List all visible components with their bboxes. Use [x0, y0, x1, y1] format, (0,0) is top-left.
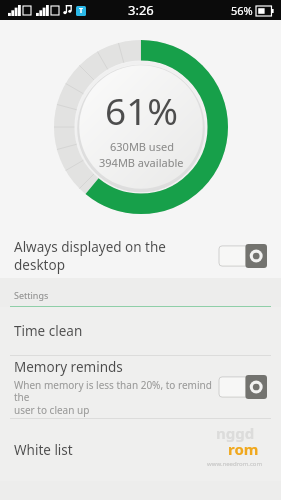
staticText: When memory is less than 20%, to remind …	[14, 378, 219, 417]
staticText: Memory reminds	[14, 358, 123, 376]
button[interactable]: Always displayed on the desktop	[0, 234, 281, 278]
staticText: Always displayed on the desktop	[14, 238, 219, 274]
staticText: www.needrom.com	[207, 460, 263, 468]
staticText: T	[79, 6, 84, 16]
staticText: 630MB used	[110, 139, 174, 154]
button[interactable]: Toggle	[219, 244, 267, 268]
staticText: 394MB available	[99, 155, 184, 170]
staticText: rom	[228, 439, 259, 459]
button[interactable]: Time clean	[0, 307, 281, 355]
staticText: Time clean	[14, 322, 83, 340]
staticText: 61%	[105, 85, 179, 135]
button[interactable]: Toggle	[219, 375, 267, 399]
button[interactable]: Memory reminds	[0, 356, 281, 418]
staticText: White list	[14, 441, 73, 459]
staticText: Settings	[14, 289, 49, 301]
staticText: 56%	[231, 3, 253, 18]
staticText: 3:26	[128, 1, 154, 19]
staticText: nggd	[216, 423, 255, 443]
